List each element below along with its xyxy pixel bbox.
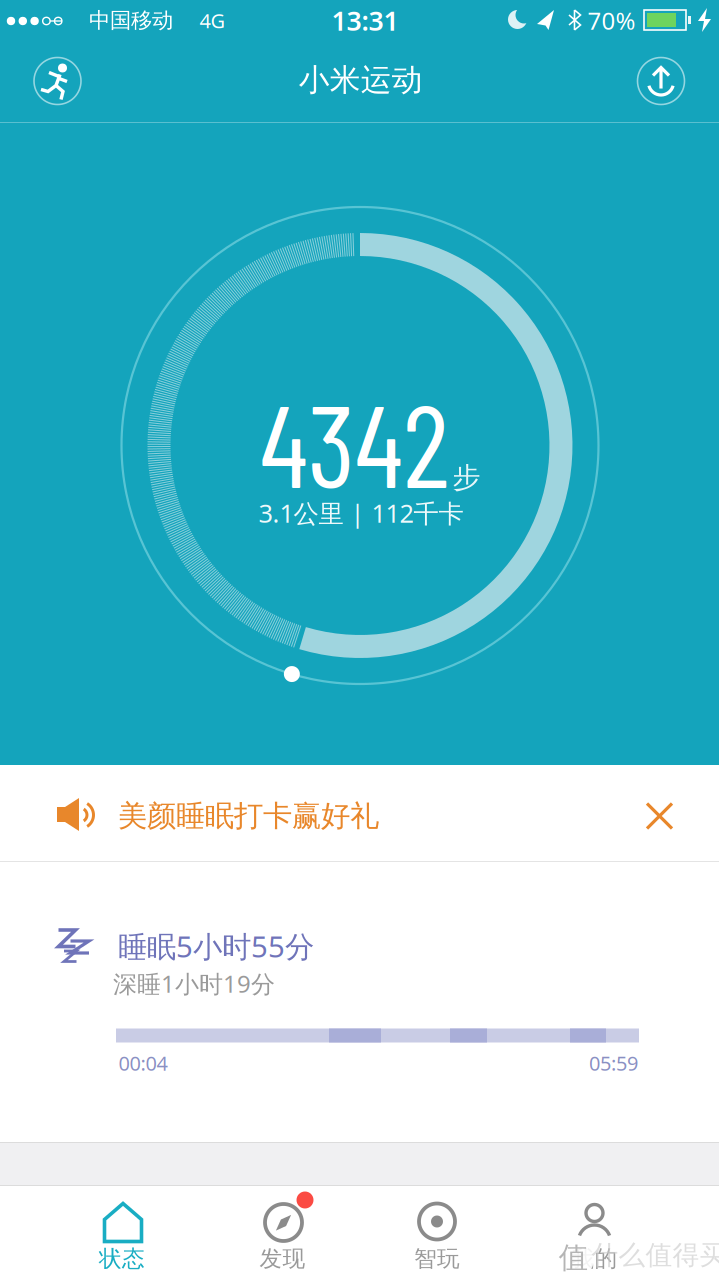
staticText: 3.1公里 | 112千卡 (258, 496, 463, 530)
button[interactable]: 运动记录 (32, 55, 83, 106)
staticText: 我的 (571, 1245, 617, 1273)
staticText: 睡眠5小时55分 (118, 926, 314, 965)
staticText: 00:04 (118, 1050, 167, 1076)
button[interactable]: 状态 (77, 1186, 169, 1280)
staticText: 深睡1小时19分 (113, 968, 275, 999)
staticText: 状态 (99, 1245, 145, 1273)
staticText: 13:31 (331, 3, 398, 38)
staticText: 发现 (259, 1245, 305, 1273)
staticText: 步 (453, 460, 481, 495)
staticText: 值 (559, 1240, 588, 1276)
staticText: 什么值得买 (591, 1239, 719, 1271)
button[interactable]: 关闭 (630, 787, 688, 845)
button[interactable]: 发现 (237, 1186, 329, 1280)
button[interactable]: 美颜睡眠打卡赢好礼 (0, 765, 610, 861)
button[interactable]: 分享 (635, 55, 686, 106)
button[interactable]: 智玩 (391, 1186, 483, 1280)
staticText: 4G (199, 7, 225, 34)
staticText: 05:59 (589, 1050, 638, 1076)
staticText: 美颜睡眠打卡赢好礼 (118, 798, 379, 834)
staticText: 智玩 (414, 1245, 460, 1273)
button[interactable]: 睡眠5小时55分 (0, 862, 719, 1142)
staticText: 4342 (260, 372, 450, 511)
button[interactable]: 我的 (548, 1186, 640, 1280)
staticText: 70% (587, 5, 635, 36)
staticText: 小米运动 (299, 61, 423, 99)
staticText: 中国移动 (89, 7, 173, 34)
